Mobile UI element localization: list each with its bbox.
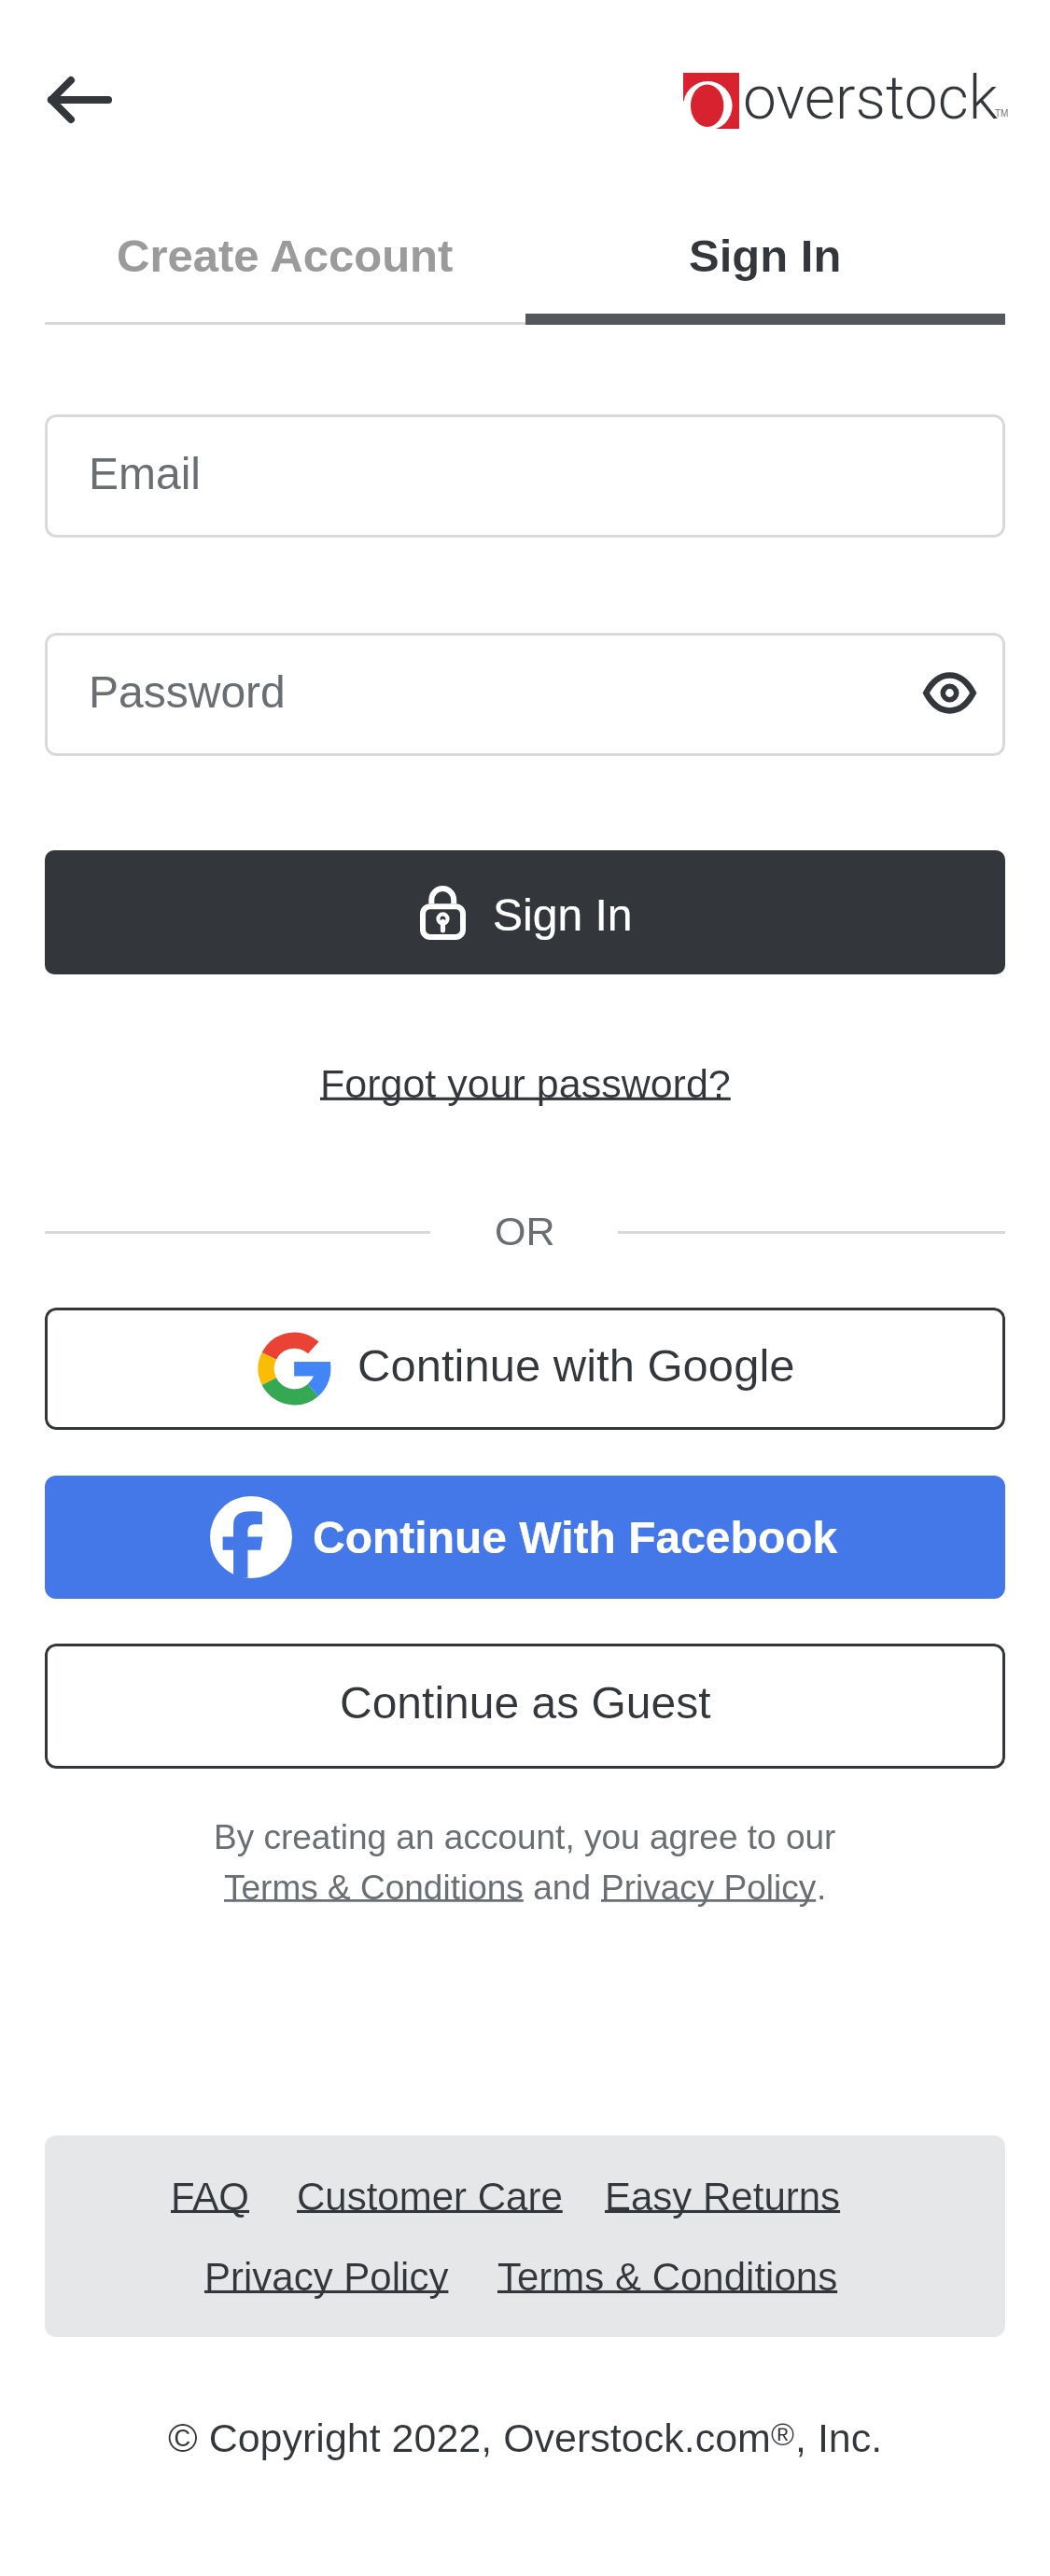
- staticText: Continue with Google: [357, 1340, 795, 1392]
- button[interactable]: Terms & Conditions: [497, 2255, 838, 2299]
- staticText: .: [817, 1869, 827, 1907]
- button[interactable]: Password: [45, 633, 1005, 756]
- button[interactable]: Continue as Guest: [45, 1644, 1005, 1769]
- staticText: Continue as Guest: [340, 1678, 711, 1729]
- button[interactable]: Show password: [908, 651, 990, 734]
- button[interactable]: Customer Care: [297, 2175, 563, 2219]
- button[interactable]: Forgot your password?: [313, 1057, 738, 1110]
- button[interactable]: Sign In: [45, 850, 1005, 974]
- staticText: and: [524, 1869, 601, 1907]
- staticText: overstock: [743, 63, 999, 133]
- staticText: , Inc.: [795, 2415, 883, 2460]
- button[interactable]: Continue With Facebook: [45, 1476, 1005, 1599]
- staticText: Create Account: [117, 231, 454, 282]
- button[interactable]: Privacy Policy: [204, 2255, 449, 2299]
- button[interactable]: Easy Returns: [605, 2175, 841, 2219]
- staticText: Email: [89, 449, 202, 499]
- staticText: © Copyright 2022, Overstock.com: [168, 2415, 771, 2460]
- staticText: Password: [89, 667, 286, 718]
- staticText: OR: [495, 1209, 555, 1253]
- staticText: By creating an account, you agree to our: [214, 1818, 836, 1856]
- button[interactable]: Create Account: [45, 213, 525, 325]
- staticText: TM: [995, 108, 1009, 119]
- button[interactable]: Back: [38, 57, 124, 143]
- staticText: Sign In: [689, 231, 842, 282]
- staticText: ®: [771, 2416, 795, 2452]
- button[interactable]: Terms & Conditions: [224, 1869, 524, 1907]
- button[interactable]: Sign In: [525, 213, 1005, 325]
- staticText: Continue With Facebook: [313, 1513, 838, 1563]
- button[interactable]: Continue with Google: [45, 1308, 1005, 1430]
- staticText: Sign In: [493, 890, 633, 941]
- button[interactable]: Privacy Policy: [601, 1869, 817, 1907]
- button[interactable]: Email: [45, 414, 1005, 538]
- button[interactable]: FAQ: [171, 2175, 250, 2219]
